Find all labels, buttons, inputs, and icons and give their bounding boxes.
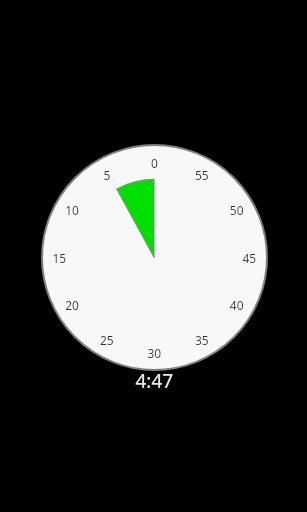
button[interactable]: Countdown timer dial — [0, 0, 307, 512]
